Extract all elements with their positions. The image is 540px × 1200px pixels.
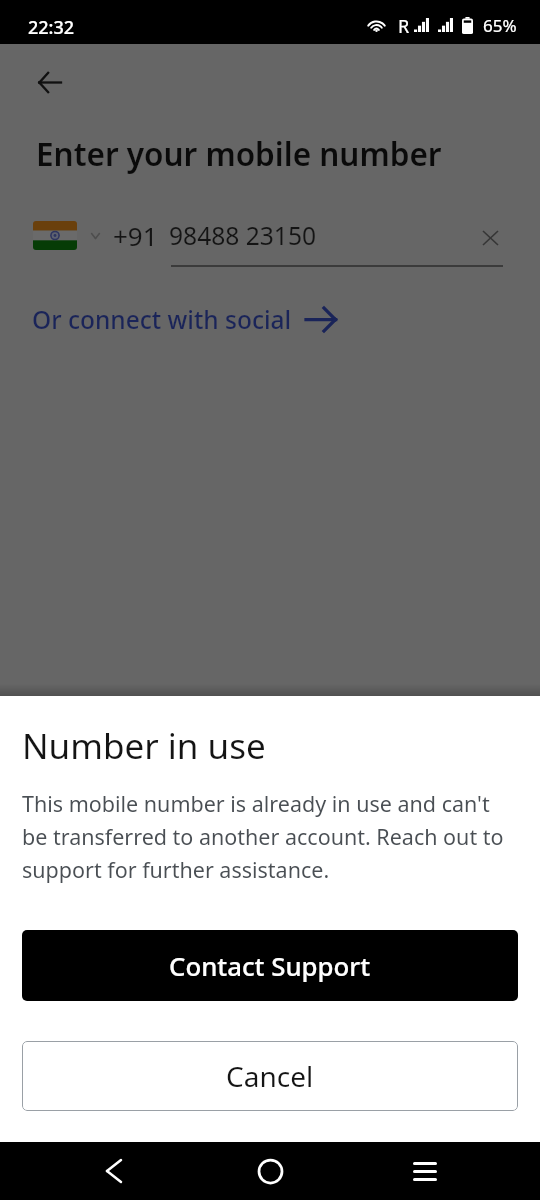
staticText: 22:32 (28, 15, 75, 40)
staticText: Number in use (22, 722, 266, 770)
button[interactable]: Back (25, 58, 73, 106)
staticText: 65% (483, 14, 517, 37)
staticText: Or connect with social (32, 303, 292, 336)
button[interactable]: Cancel (22, 1041, 518, 1111)
button[interactable]: Or connect with social (32, 303, 337, 336)
staticText: 98488 23150 (169, 219, 317, 253)
staticText: This mobile number is already in use and… (22, 789, 518, 885)
staticText: Enter your mobile number (36, 132, 442, 175)
button[interactable]: Clear (475, 223, 505, 253)
staticText: R (398, 14, 410, 39)
staticText: Contact Support (169, 948, 371, 983)
button[interactable]: Recents (395, 1142, 455, 1200)
staticText: +91 (113, 218, 158, 253)
button[interactable]: Contact Support (22, 930, 518, 1001)
button[interactable]: Select country code (28, 208, 104, 250)
staticText: Cancel (226, 1057, 314, 1095)
button[interactable]: Home (240, 1142, 300, 1200)
button[interactable]: Back (84, 1142, 144, 1200)
